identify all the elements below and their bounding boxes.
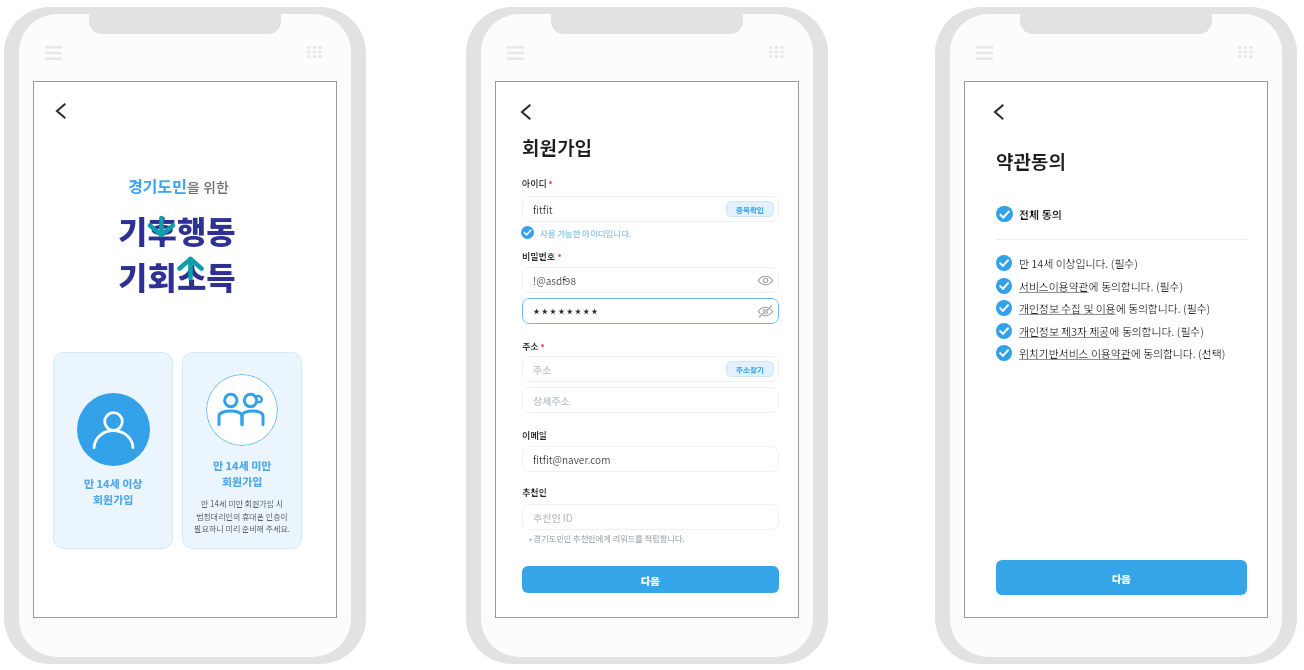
button[interactable]: 다음 xyxy=(522,566,779,593)
button[interactable]: Back xyxy=(989,102,1009,122)
button[interactable]: 개인정보 제3자 제공에 동의합니다. (필수) xyxy=(996,323,1247,339)
staticText: 약관동의 xyxy=(996,147,1066,175)
button[interactable]: 주소찾기 xyxy=(736,361,764,377)
staticText: 만 14세 이상입니다. (필수) xyxy=(1019,255,1138,271)
staticText: 회원가입 xyxy=(522,133,592,161)
staticText: 다음 xyxy=(1112,571,1131,585)
staticText: 사용 가능한 아이디입니다. xyxy=(540,227,632,239)
staticText: 기후행동 xyxy=(118,207,236,253)
staticText: 회원가입 xyxy=(222,473,263,489)
button[interactable]: 개인정보 수집 및 이용에 동의합니다. (필수) xyxy=(996,300,1247,316)
button[interactable]: Menu xyxy=(45,46,62,60)
staticText: 상세주소 xyxy=(533,393,570,407)
button[interactable]: 중복확인 xyxy=(736,201,764,217)
staticText: 주소 xyxy=(522,340,539,353)
staticText: 서비스이용약관에 동의합니다. (필수) xyxy=(1019,278,1184,294)
staticText: 회원가입 xyxy=(93,491,134,507)
button[interactable]: 만 14세 미만 xyxy=(182,352,302,549)
staticText: ★★★★★★★★ xyxy=(533,306,600,316)
staticText: 다음 xyxy=(641,573,660,587)
staticText: 만 14세 미만 회원가입 시 법정대리인의 휴대폰 인증이 필요하니 미리 준… xyxy=(194,498,290,534)
button[interactable]: 만 14세 이상 xyxy=(53,352,173,549)
staticText: !@asdf98 xyxy=(533,273,576,287)
staticText: 추천인 ID xyxy=(533,510,573,524)
button[interactable]: Back xyxy=(51,101,71,121)
staticText: 아이디 xyxy=(522,177,547,190)
button[interactable]: Menu xyxy=(507,46,524,60)
staticText: 을 위한 xyxy=(187,177,229,197)
button[interactable]: Show password xyxy=(757,272,774,289)
staticText: 경기도민 xyxy=(128,174,187,197)
staticText: 주소 xyxy=(533,362,552,376)
button[interactable]: 상세주소 xyxy=(522,387,779,413)
button[interactable]: Apps xyxy=(307,46,324,60)
staticText: 중복확인 xyxy=(736,204,764,215)
button[interactable]: 전체 동의 xyxy=(996,206,1247,222)
staticText: 위치기반서비스 이용약관에 동의합니다. (선택) xyxy=(1019,345,1226,361)
button[interactable]: 서비스이용약관에 동의합니다. (필수) xyxy=(996,278,1247,294)
staticText: 전체 동의 xyxy=(1019,206,1062,222)
button[interactable]: 다음 xyxy=(996,560,1247,595)
button[interactable]: Apps xyxy=(1238,46,1255,60)
staticText: 이메일 xyxy=(522,429,547,442)
staticText: 비밀번호 xyxy=(522,250,556,263)
staticText: 만 14세 미만 xyxy=(213,457,272,473)
staticText: 만 14세 이상 xyxy=(84,475,143,491)
staticText: • 경기도민인 추천인에게 리워드를 적립합니다. xyxy=(529,532,685,544)
button[interactable]: !@asdf98 xyxy=(522,267,779,293)
button[interactable]: 만 14세 이상입니다. (필수) xyxy=(996,255,1247,271)
button[interactable]: 추천인 ID xyxy=(522,504,779,530)
button[interactable]: fitfit@naver.com xyxy=(522,446,779,472)
staticText: 개인정보 수집 및 이용에 동의합니다. (필수) xyxy=(1019,300,1211,316)
button[interactable]: 위치기반서비스 이용약관에 동의합니다. (선택) xyxy=(996,345,1247,361)
button[interactable]: Menu xyxy=(976,46,993,60)
button[interactable]: 주소 xyxy=(522,356,779,382)
button[interactable]: Hide password xyxy=(757,303,774,320)
button[interactable]: Back xyxy=(516,102,536,122)
staticText: fitfit xyxy=(533,202,553,216)
staticText: 개인정보 제3자 제공에 동의합니다. (필수) xyxy=(1019,323,1204,339)
button[interactable]: ★★★★★★★★ xyxy=(522,298,779,324)
staticText: fitfit@naver.com xyxy=(533,452,611,466)
staticText: 기회소득 xyxy=(118,253,236,299)
staticText: 추천인 xyxy=(522,486,547,499)
button[interactable]: fitfit xyxy=(522,196,779,222)
button[interactable]: Apps xyxy=(769,46,786,60)
staticText: 주소찾기 xyxy=(736,364,764,375)
